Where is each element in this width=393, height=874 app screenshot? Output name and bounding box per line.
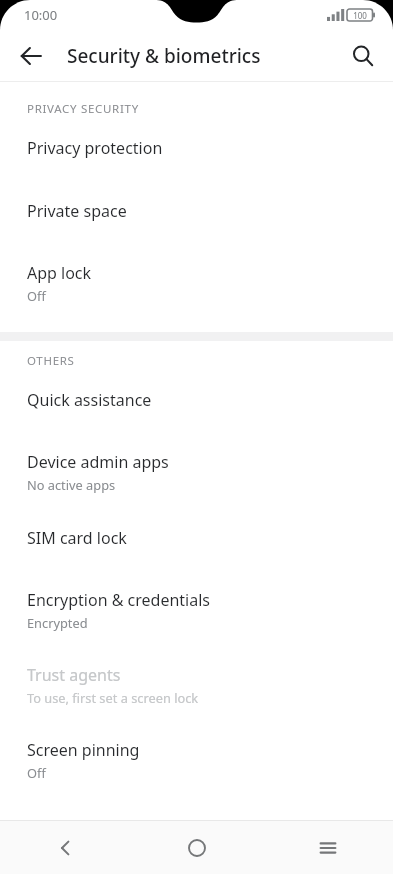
button[interactable]: Back	[0, 821, 131, 874]
staticText: To use, first set a screen lock	[27, 689, 199, 706]
button[interactable]: SIM card lock	[0, 507, 393, 570]
button[interactable]: App lock	[0, 243, 393, 318]
staticText: Quick assistance	[27, 389, 152, 411]
button[interactable]: Recent apps	[262, 821, 393, 874]
staticText: Off	[27, 764, 46, 781]
staticText: 10:00	[24, 6, 58, 24]
button[interactable]: Home	[131, 821, 262, 874]
button[interactable]: Trust agents	[0, 645, 393, 720]
staticText: 100	[353, 10, 367, 21]
button[interactable]: Privacy protection	[0, 117, 393, 180]
staticText: No active apps	[27, 476, 116, 493]
staticText: PRIVACY SECURITY	[27, 101, 139, 117]
staticText: SIM card lock	[27, 527, 127, 549]
staticText: Off	[27, 287, 46, 304]
button[interactable]: Search	[341, 34, 385, 78]
staticText: Device admin apps	[27, 451, 169, 473]
staticText: Screen pinning	[27, 739, 140, 761]
staticText: App lock	[27, 262, 92, 284]
staticText: OTHERS	[27, 353, 75, 369]
staticText: Security & biometrics	[67, 43, 261, 69]
staticText: Encrypted	[27, 614, 88, 631]
staticText: Encryption & credentials	[27, 589, 210, 611]
button[interactable]: Encryption & credentials	[0, 570, 393, 645]
button[interactable]: Screen pinning	[0, 720, 393, 795]
staticText: Privacy protection	[27, 137, 163, 159]
button[interactable]: Back	[11, 36, 51, 76]
button[interactable]: Device admin apps	[0, 432, 393, 507]
staticText: Private space	[27, 200, 127, 222]
button[interactable]: Private space	[0, 180, 393, 243]
button[interactable]: Quick assistance	[0, 369, 393, 432]
staticText: Trust agents	[27, 664, 121, 686]
